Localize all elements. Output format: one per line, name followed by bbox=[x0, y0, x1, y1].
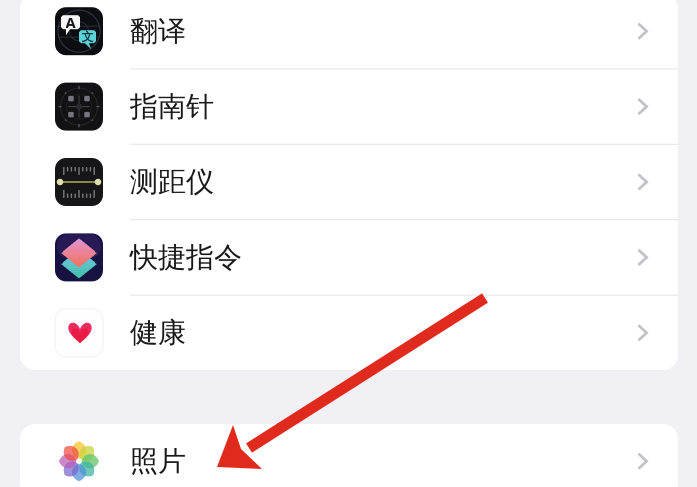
staticText: 快捷指令 bbox=[130, 240, 242, 275]
button[interactable]: 测距仪 bbox=[20, 145, 678, 219]
staticText: 照片 bbox=[130, 444, 186, 478]
staticText: 指南针 bbox=[130, 89, 214, 124]
button[interactable]: 健康 bbox=[20, 296, 678, 370]
staticText: 健康 bbox=[130, 316, 186, 350]
button[interactable]: 指南针 bbox=[20, 69, 678, 144]
staticText: 测距仪 bbox=[130, 165, 214, 199]
staticText: 翻译 bbox=[130, 14, 186, 48]
staticText: 文 bbox=[81, 29, 93, 44]
button[interactable]: 照片 bbox=[20, 424, 678, 487]
button[interactable]: 文 bbox=[20, 0, 678, 68]
staticText: A bbox=[65, 12, 75, 32]
button[interactable]: 快捷指令 bbox=[20, 220, 678, 295]
